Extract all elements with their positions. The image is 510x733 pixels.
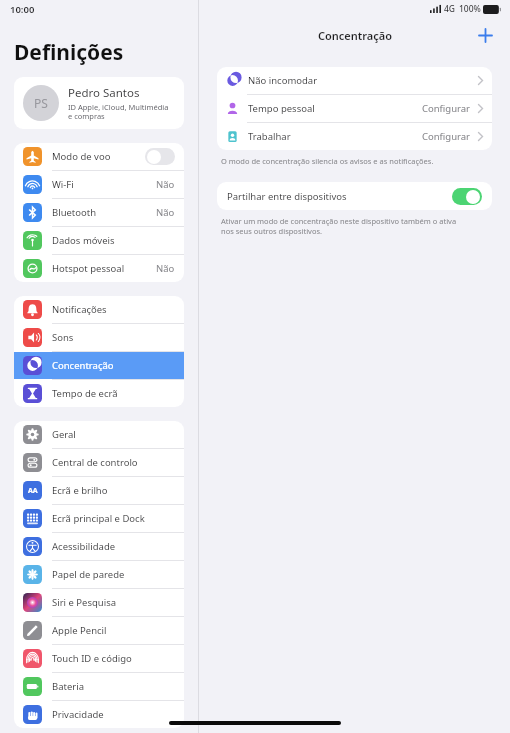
staticText: Partilhar entre dispositivos (227, 190, 452, 203)
staticText: Bateria (52, 680, 175, 693)
button[interactable]: Bateria (14, 673, 184, 700)
staticText: 100% (459, 3, 481, 15)
staticText: Notificações (52, 303, 175, 316)
staticText: Configurar (422, 130, 471, 143)
button[interactable]: Concentração (14, 352, 184, 379)
staticText: Trabalhar (248, 130, 422, 143)
staticText: Não (156, 178, 175, 191)
staticText: ID Apple, iCloud, Multimédia e compras (68, 102, 169, 122)
staticText: Hotspot pessoal (52, 262, 156, 275)
staticText: Sons (52, 331, 175, 344)
staticText: Siri e Pesquisa (52, 596, 175, 609)
button[interactable]: Adicionar (474, 24, 496, 46)
staticText: 10:00 (10, 3, 35, 16)
staticText: Não incomodar (248, 74, 478, 87)
button[interactable]: Ecrã principal e Dock (14, 505, 184, 532)
staticText: Modo de voo (52, 150, 145, 163)
staticText: Concentração (52, 359, 175, 372)
button[interactable]: Geral (14, 421, 184, 448)
button[interactable]: Bluetooth (14, 199, 184, 226)
staticText: Tempo de ecrã (52, 387, 175, 400)
button[interactable]: Trabalhar (217, 123, 492, 150)
button[interactable]: Tempo pessoal (217, 95, 492, 122)
button[interactable]: Não incomodar (217, 67, 492, 94)
staticText: Tempo pessoal (248, 102, 422, 115)
button[interactable]: Siri e Pesquisa (14, 589, 184, 616)
button[interactable]: Partilhar entre dispositivos (217, 182, 492, 210)
button[interactable]: Touch ID e código (14, 645, 184, 672)
staticText: Ecrã principal e Dock (52, 512, 175, 525)
staticText: Wi-Fi (52, 178, 156, 191)
button[interactable]: Modo de voo (14, 143, 184, 170)
staticText: Concentração (318, 28, 392, 43)
staticText: Configurar (422, 102, 471, 115)
staticText: Dados móveis (52, 234, 175, 247)
staticText: Ativar um modo de concentração neste dis… (221, 216, 457, 236)
staticText: Geral (52, 428, 175, 441)
button[interactable]: Acessibilidade (14, 533, 184, 560)
button[interactable]: Papel de parede (14, 561, 184, 588)
button[interactable]: Tempo de ecrã (14, 380, 184, 407)
staticText: PS (34, 95, 48, 111)
staticText: Bluetooth (52, 206, 156, 219)
staticText: O modo de concentração silencia os aviso… (221, 156, 434, 166)
button[interactable]: Notificações (14, 296, 184, 323)
staticText: AA (28, 486, 38, 496)
button[interactable]: Wi-Fi (14, 171, 184, 198)
button[interactable]: Sons (14, 324, 184, 351)
button[interactable]: Central de controlo (14, 449, 184, 476)
button[interactable]: Apple Pencil (14, 617, 184, 644)
staticText: Ecrã e brilho (52, 484, 175, 497)
button[interactable]: AA (14, 477, 184, 504)
button[interactable]: Alternar (452, 188, 482, 205)
button[interactable]: Privacidade (14, 701, 184, 728)
staticText: 4G (444, 3, 456, 15)
staticText: Central de controlo (52, 456, 175, 469)
staticText: Definições (14, 38, 124, 67)
staticText: Não (156, 262, 175, 275)
button[interactable]: Alternar (145, 148, 175, 165)
staticText: Pedro Santos (68, 85, 140, 101)
staticText: Apple Pencil (52, 624, 175, 637)
button[interactable]: Hotspot pessoal (14, 255, 184, 282)
staticText: Touch ID e código (52, 652, 175, 665)
staticText: Papel de parede (52, 568, 175, 581)
button[interactable]: Dados móveis (14, 227, 184, 254)
staticText: Não (156, 206, 175, 219)
staticText: Acessibilidade (52, 540, 175, 553)
staticText: Privacidade (52, 708, 175, 721)
button[interactable]: PS (14, 77, 184, 129)
